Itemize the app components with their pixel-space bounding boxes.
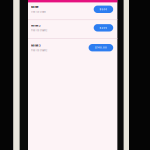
staticText: $5.00 <box>99 8 107 11</box>
button[interactable]: $2.00 <box>94 24 113 31</box>
staticText: free ice cream2 <box>31 29 47 32</box>
staticText: $2.00 <box>99 26 107 29</box>
staticText: $140.00 <box>95 46 107 49</box>
staticText: Mileve <box>31 6 39 9</box>
staticText: Mileve2 <box>31 24 41 27</box>
button[interactable]: $5.00 <box>94 6 113 13</box>
staticText: Mileve3 <box>31 44 41 47</box>
button[interactable]: $140.00 <box>89 44 113 51</box>
staticText: free ice cream <box>31 11 46 13</box>
staticText: free ice cream2 <box>31 49 47 52</box>
